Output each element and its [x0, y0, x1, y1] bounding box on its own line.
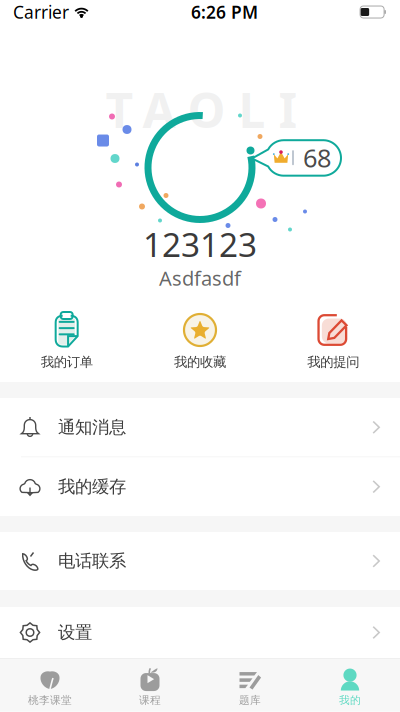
staticText: 我的提问 [307, 354, 359, 370]
staticText: Asdfasdf [159, 265, 241, 291]
button[interactable]: 通知消息 [0, 398, 400, 457]
staticText: 课程 [139, 693, 161, 707]
button[interactable]: 设置 [0, 607, 400, 658]
button[interactable]: 题库 [200, 659, 300, 712]
staticText: 123123 [143, 222, 257, 266]
staticText: 6:26 PM [191, 0, 258, 23]
staticText: 桃李课堂 [28, 693, 72, 707]
staticText: TAOLI [105, 78, 297, 141]
button[interactable]: 我的缓存 [0, 457, 400, 516]
button[interactable]: 课程 [100, 659, 200, 712]
staticText: 我的缓存 [58, 476, 126, 497]
staticText: Carrier [13, 0, 69, 23]
staticText: 我的订单 [41, 354, 93, 370]
button[interactable]: 桃李课堂 [0, 659, 100, 712]
staticText: 通知消息 [58, 417, 126, 438]
button[interactable]: 我的 [300, 659, 400, 712]
staticText: 题库 [239, 693, 261, 707]
staticText: 68 [303, 141, 331, 174]
staticText: 电话联系 [58, 550, 126, 572]
staticText: 设置 [58, 622, 92, 643]
button[interactable]: 我的订单 [0, 300, 133, 376]
button[interactable]: 我的提问 [267, 300, 400, 376]
staticText: 我的 [339, 693, 361, 707]
button[interactable]: 电话联系 [0, 532, 400, 590]
button[interactable]: 我的收藏 [133, 300, 267, 376]
staticText: 我的收藏 [174, 354, 226, 370]
